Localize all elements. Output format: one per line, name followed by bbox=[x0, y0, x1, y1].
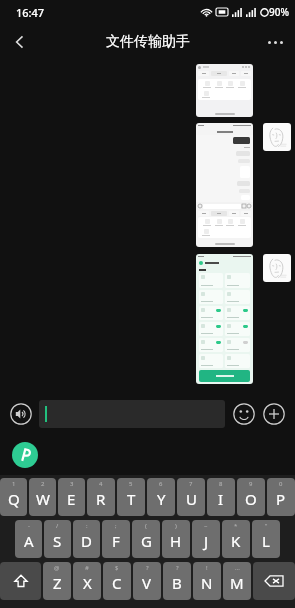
staticText: U bbox=[186, 489, 197, 509]
button[interactable]: ( bbox=[132, 520, 160, 558]
staticText: H bbox=[170, 531, 182, 551]
staticText: B bbox=[172, 573, 182, 593]
staticText: * bbox=[234, 522, 238, 530]
button[interactable]: More options bbox=[255, 24, 295, 60]
button[interactable]: Emoji bbox=[229, 399, 259, 429]
button[interactable]: / bbox=[44, 520, 71, 558]
staticText: - bbox=[28, 522, 30, 530]
staticText: 2 bbox=[41, 480, 45, 488]
button[interactable]: Screenshot image bbox=[196, 123, 253, 247]
staticText: N bbox=[201, 573, 213, 593]
staticText: L bbox=[262, 531, 270, 551]
staticText: ? bbox=[146, 564, 149, 572]
staticText: 5 bbox=[129, 480, 133, 488]
staticText: D bbox=[81, 531, 92, 551]
staticText: 8 bbox=[219, 480, 223, 488]
staticText: ; bbox=[115, 522, 117, 530]
button[interactable]: More functions bbox=[259, 399, 289, 429]
staticText: G bbox=[141, 531, 152, 551]
staticText: $ bbox=[115, 564, 119, 572]
button[interactable] bbox=[39, 400, 225, 428]
staticText: ( bbox=[145, 522, 147, 530]
button[interactable]: : bbox=[73, 520, 100, 558]
staticText: : bbox=[86, 522, 88, 530]
staticText: M bbox=[230, 573, 244, 593]
staticText: 4 bbox=[99, 480, 103, 488]
button[interactable]: 9 bbox=[237, 478, 265, 516]
button[interactable]: Voice input bbox=[6, 399, 36, 429]
button[interactable]: 7 bbox=[177, 478, 205, 516]
button[interactable]: ~ bbox=[192, 520, 220, 558]
button[interactable]: Shift bbox=[0, 562, 41, 600]
staticText: ! bbox=[206, 564, 208, 572]
button[interactable]: 4 bbox=[87, 478, 115, 516]
staticText: 7 bbox=[189, 480, 193, 488]
staticText: 16:47 bbox=[16, 5, 45, 20]
button[interactable]: 5 bbox=[117, 478, 145, 516]
staticText: " bbox=[265, 522, 268, 530]
staticText: C bbox=[112, 573, 122, 593]
button[interactable]: ? bbox=[163, 562, 191, 600]
button[interactable]: * bbox=[222, 520, 250, 558]
staticText: J bbox=[204, 531, 209, 551]
button[interactable]: Backspace bbox=[253, 562, 295, 600]
staticText: 0 bbox=[279, 480, 283, 488]
staticText: ~ bbox=[204, 522, 208, 530]
button[interactable]: ... bbox=[223, 562, 251, 600]
button[interactable]: ? bbox=[133, 562, 161, 600]
staticText: @ bbox=[54, 564, 60, 572]
button[interactable]: @ bbox=[43, 562, 71, 600]
button[interactable]: Plugin bbox=[12, 442, 38, 468]
staticText: ? bbox=[176, 564, 179, 572]
staticText: Y bbox=[157, 489, 166, 509]
button[interactable]: 3 bbox=[58, 478, 85, 516]
staticText: 9 bbox=[249, 480, 253, 488]
button[interactable]: # bbox=[73, 562, 101, 600]
button[interactable]: Screenshot image bbox=[196, 64, 253, 117]
staticText: / bbox=[56, 522, 59, 530]
staticText: Q bbox=[8, 489, 20, 509]
staticText: 6 bbox=[159, 480, 163, 488]
staticText: A bbox=[24, 531, 34, 551]
button[interactable]: Sketch thumbnail bbox=[263, 254, 291, 282]
staticText: P bbox=[276, 489, 286, 509]
button[interactable]: 0 bbox=[267, 478, 295, 516]
staticText: X bbox=[83, 573, 92, 593]
staticText: I bbox=[218, 489, 224, 509]
staticText: R bbox=[96, 489, 106, 509]
button[interactable]: Sketch thumbnail bbox=[263, 123, 291, 151]
staticText: ) bbox=[175, 522, 177, 530]
button[interactable]: ) bbox=[162, 520, 190, 558]
staticText: 文件传输助手 bbox=[106, 33, 190, 51]
staticText: S bbox=[53, 531, 62, 551]
staticText: 3 bbox=[70, 480, 74, 488]
button[interactable]: 1 bbox=[0, 478, 27, 516]
button[interactable]: $ bbox=[103, 562, 131, 600]
button[interactable]: 6 bbox=[147, 478, 175, 516]
staticText: O bbox=[245, 489, 257, 509]
button[interactable]: Back bbox=[0, 24, 40, 60]
staticText: V bbox=[142, 573, 152, 593]
staticText: 90% bbox=[269, 5, 289, 19]
staticText: W bbox=[36, 489, 50, 509]
staticText: Z bbox=[53, 573, 62, 593]
button[interactable]: ! bbox=[193, 562, 221, 600]
button[interactable]: Screenshot image bbox=[196, 254, 253, 384]
staticText: 1 bbox=[12, 480, 16, 488]
staticText: T bbox=[127, 489, 136, 509]
staticText: ... bbox=[235, 564, 240, 572]
button[interactable]: " bbox=[252, 520, 280, 558]
button[interactable]: - bbox=[15, 520, 42, 558]
staticText: F bbox=[112, 531, 120, 551]
staticText: E bbox=[67, 489, 76, 509]
staticText: K bbox=[231, 531, 241, 551]
staticText: # bbox=[85, 564, 89, 572]
button[interactable]: 8 bbox=[207, 478, 235, 516]
button[interactable]: ; bbox=[102, 520, 130, 558]
button[interactable]: 2 bbox=[29, 478, 56, 516]
